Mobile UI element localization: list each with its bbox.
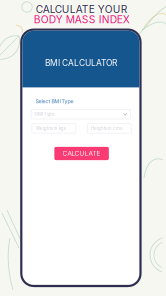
staticText: Weights in kgs xyxy=(36,126,66,131)
staticText: BMI Type xyxy=(35,112,55,117)
button[interactable]: CALCULATE xyxy=(54,147,109,160)
staticText: BODY MASS INDEX xyxy=(34,13,130,26)
staticText: BMI CALCULATOR xyxy=(45,58,117,68)
staticText: Heights in cms xyxy=(91,126,122,131)
staticText: Select BMI Type xyxy=(36,98,74,104)
staticText: CALCULATE xyxy=(63,150,101,157)
staticText: CALCULATE YOUR xyxy=(36,3,128,16)
